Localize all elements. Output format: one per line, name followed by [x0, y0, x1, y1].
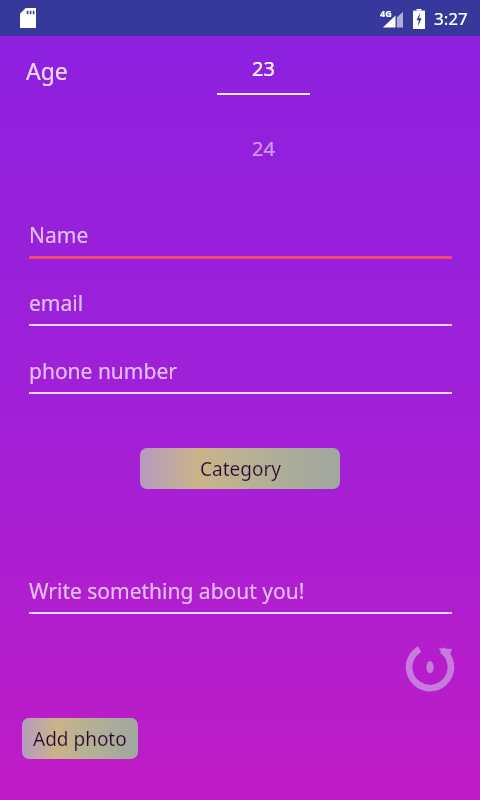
staticText: Category: [200, 456, 281, 482]
button[interactable]: Write something about you!: [29, 577, 452, 614]
staticText: 23: [252, 55, 275, 82]
button[interactable]: Name: [29, 221, 452, 259]
button[interactable]: Rotate photo: [398, 634, 462, 698]
button[interactable]: Add photo: [22, 718, 138, 759]
button[interactable]: email: [29, 289, 452, 326]
button[interactable]: phone number: [29, 357, 452, 394]
staticText: Write something about you!: [29, 577, 305, 606]
staticText: 24: [252, 135, 275, 162]
staticText: email: [29, 289, 84, 318]
staticText: 3:27: [434, 7, 468, 30]
staticText: 4G: [380, 7, 392, 19]
button[interactable]: 23: [217, 36, 310, 166]
staticText: phone number: [29, 357, 177, 386]
staticText: Name: [29, 221, 89, 250]
staticText: Age: [26, 55, 68, 86]
staticText: Add photo: [33, 726, 127, 752]
button[interactable]: Category: [140, 448, 340, 489]
